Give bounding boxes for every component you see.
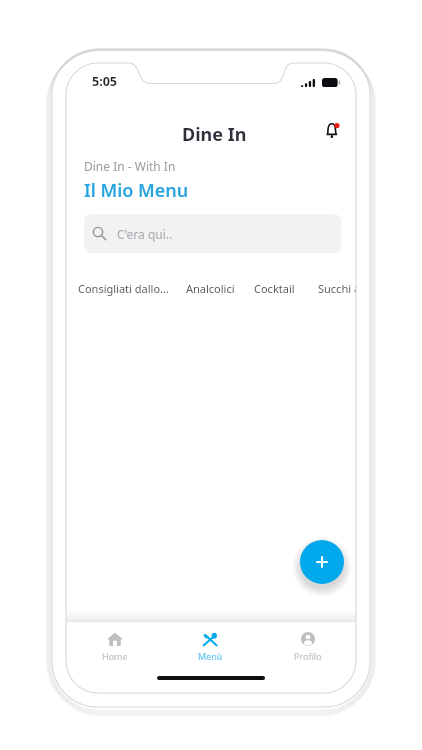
staticText: Home	[102, 650, 128, 662]
staticText: Menù	[198, 650, 223, 662]
button[interactable]: Succhi &	[318, 281, 356, 296]
staticText: C'era qui..	[117, 226, 173, 242]
staticText: Dine In - With In	[84, 158, 176, 174]
button[interactable]: Consigliati dallo...	[78, 281, 169, 296]
button[interactable]: Profilo	[288, 632, 328, 662]
staticText: Succhi &	[318, 281, 356, 296]
button[interactable]: Analcolici	[186, 281, 235, 296]
staticText: Dine In	[182, 122, 247, 147]
button[interactable]: Add	[300, 540, 344, 584]
staticText: 5:05	[92, 73, 117, 90]
staticText: Profilo	[294, 650, 322, 662]
button[interactable]: C'era qui..	[84, 214, 341, 253]
button[interactable]: Notifications	[319, 117, 345, 143]
staticText: Il Mio Menu	[84, 178, 189, 203]
staticText: Cocktail	[254, 281, 295, 296]
button[interactable]: Cocktail	[254, 281, 295, 296]
staticText: Analcolici	[186, 281, 235, 296]
button[interactable]: Home	[95, 632, 135, 662]
button[interactable]: Menù	[190, 632, 230, 662]
staticText: Consigliati dallo...	[78, 281, 169, 296]
